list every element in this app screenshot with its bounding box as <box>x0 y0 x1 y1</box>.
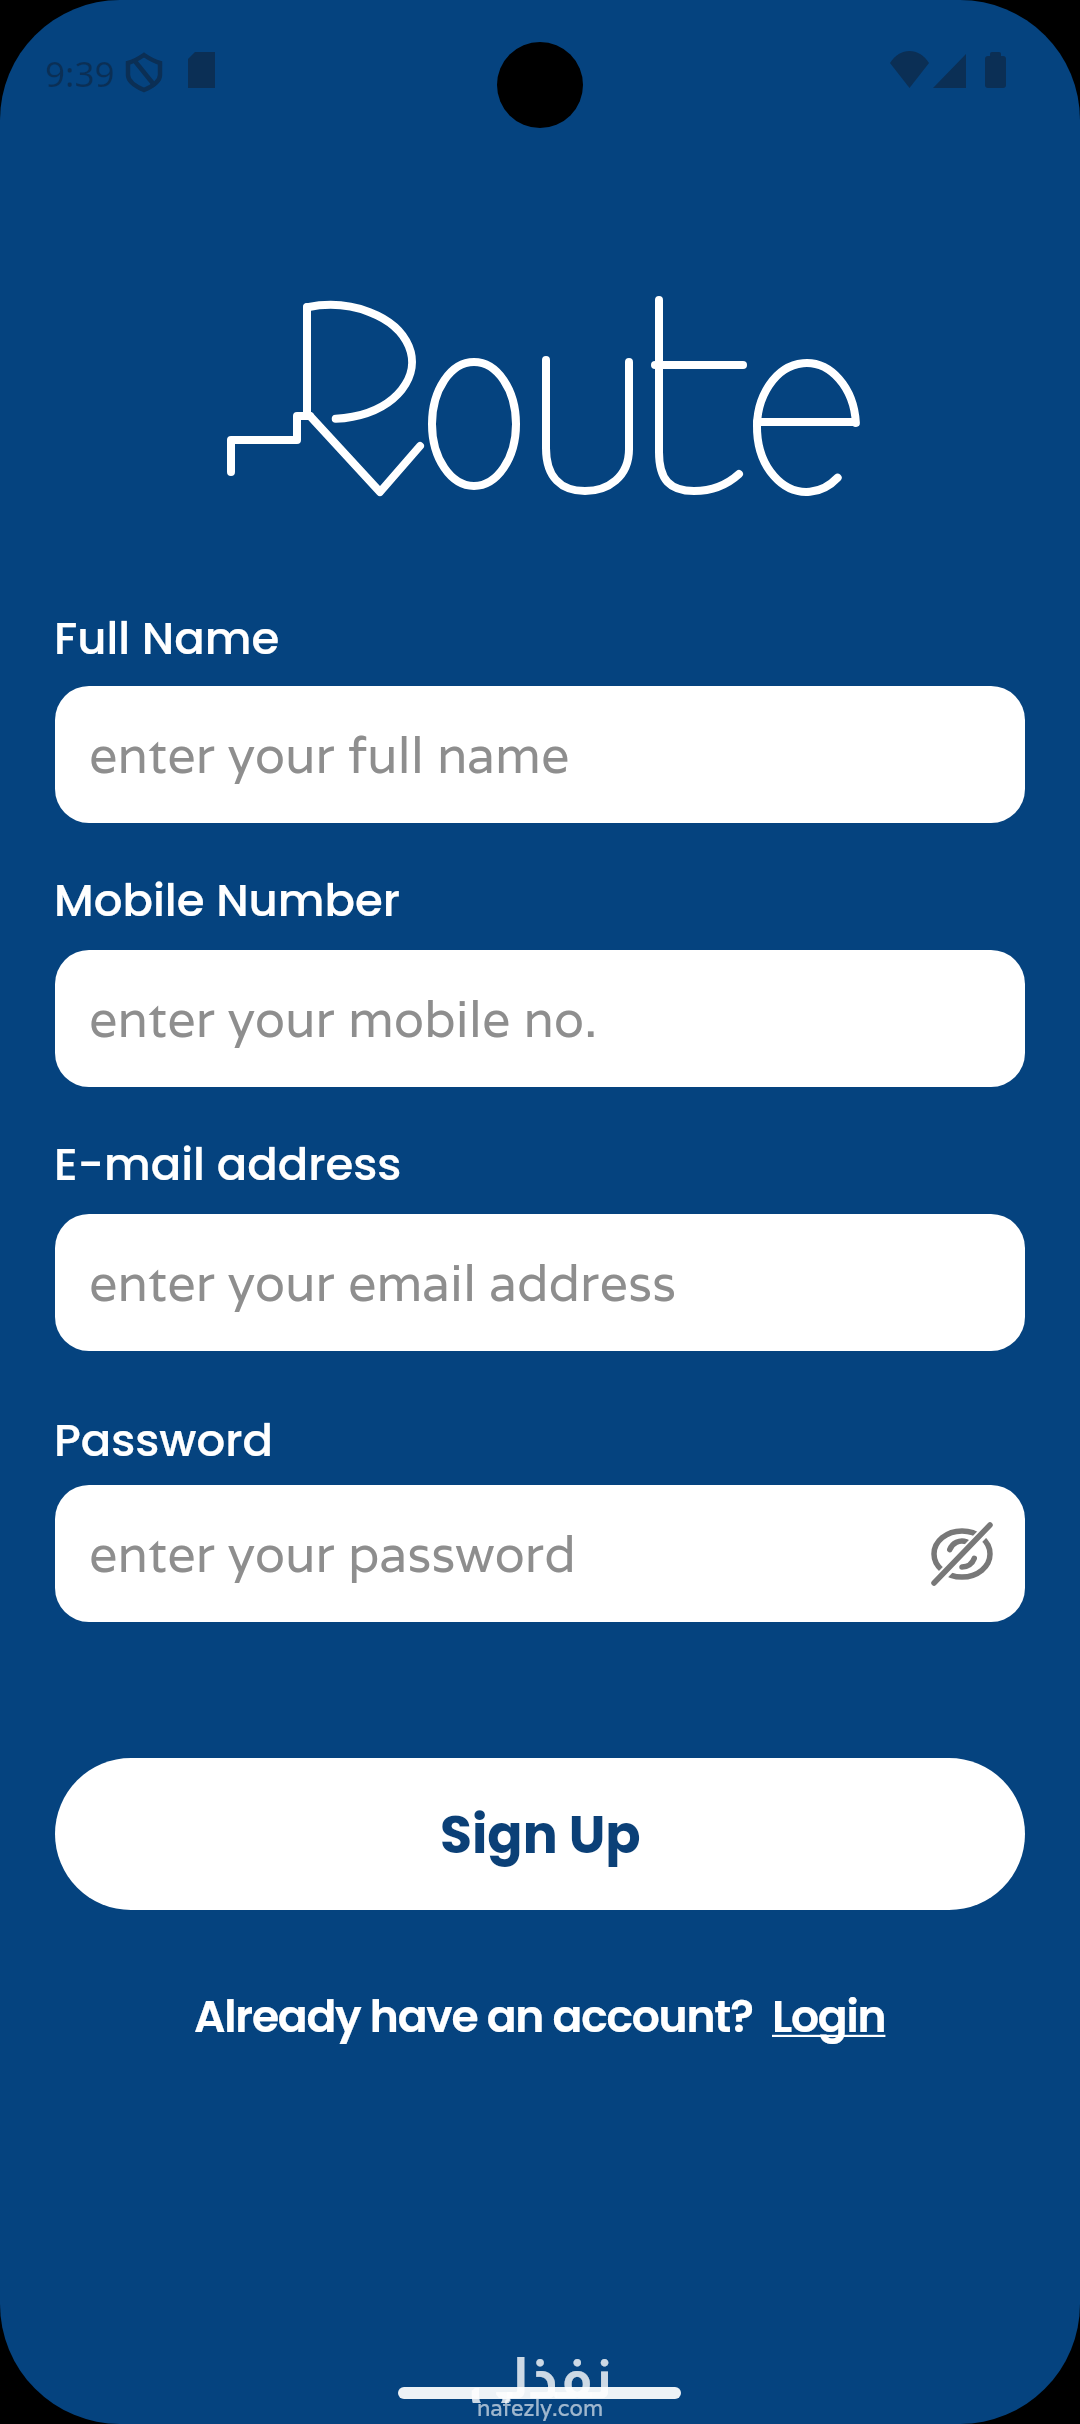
button[interactable]: Sign Up <box>55 1758 1025 1910</box>
staticText: enter your password <box>89 1521 576 1586</box>
staticText: نفذلي <box>468 2346 613 2403</box>
staticText: Already have an account? <box>194 1986 772 2048</box>
staticText: Full Name <box>54 607 280 670</box>
button[interactable]: Login <box>772 1986 886 2048</box>
button[interactable]: enter your password <box>55 1485 1025 1622</box>
staticText: 9:39 <box>45 50 115 98</box>
staticText: Sign Up <box>440 1798 641 1871</box>
staticText: Password <box>54 1409 273 1472</box>
staticText: Mobile Number <box>54 869 401 932</box>
staticText: enter your mobile no. <box>89 986 598 1051</box>
staticText: nafezly.com <box>477 2394 604 2423</box>
staticText: E-mail address <box>54 1133 402 1196</box>
staticText: enter your full name <box>89 722 570 787</box>
button[interactable]: enter your full name <box>55 686 1025 823</box>
staticText: enter your email address <box>89 1250 676 1315</box>
button[interactable] <box>929 1521 995 1587</box>
button[interactable]: enter your mobile no. <box>55 950 1025 1087</box>
button[interactable]: enter your email address <box>55 1214 1025 1351</box>
